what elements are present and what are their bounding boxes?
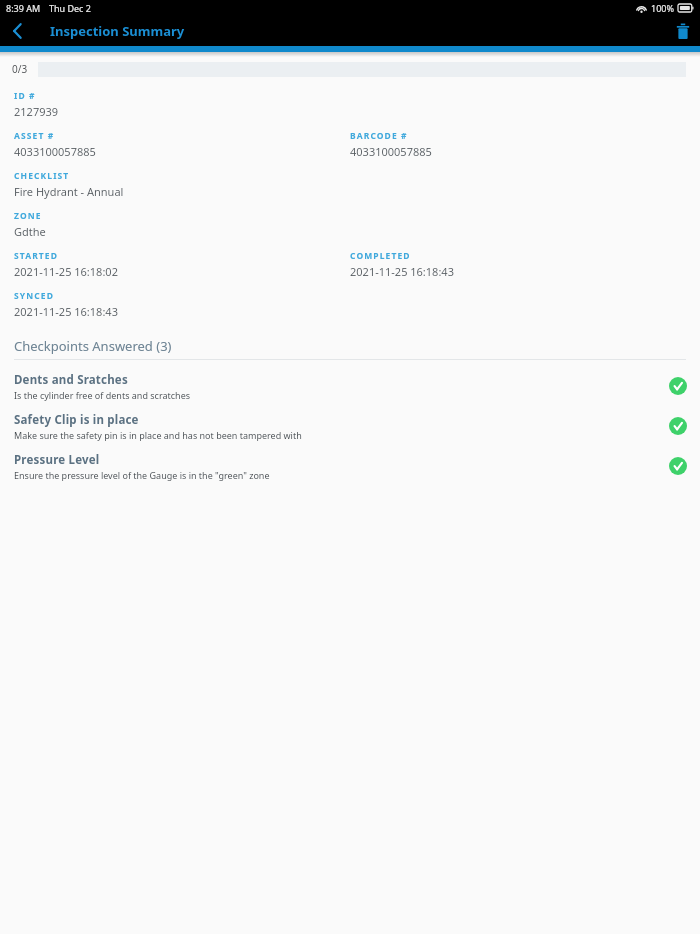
staticText: Pressure Level: [14, 452, 100, 468]
staticText: 2021-11-25 16:18:43: [14, 304, 118, 319]
staticText: 4033100057885: [350, 144, 432, 159]
staticText: ASSET #: [14, 130, 55, 142]
staticText: STARTED: [14, 250, 59, 262]
staticText: Inspection Summary: [50, 22, 185, 40]
staticText: BARCODE #: [350, 130, 408, 142]
staticText: Thu Dec 2: [49, 2, 91, 14]
staticText: 8:39 AM: [6, 2, 41, 14]
staticText: Fire Hydrant - Annual: [14, 184, 124, 199]
button[interactable]: Pressure Level: [0, 446, 700, 486]
button[interactable]: Delete: [666, 16, 700, 46]
staticText: 2021-11-25 16:18:43: [350, 264, 454, 279]
staticText: 2127939: [14, 104, 59, 119]
button[interactable]: Dents and Sratches: [0, 366, 700, 406]
staticText: Make sure the safety pin is in place and…: [14, 429, 302, 441]
staticText: SYNCED: [14, 290, 54, 302]
button[interactable]: Back: [0, 16, 34, 46]
staticText: Is the cylinder free of dents and scratc…: [14, 389, 191, 401]
staticText: 4033100057885: [14, 144, 96, 159]
staticText: 100%: [651, 2, 674, 14]
staticText: Dents and Sratches: [14, 372, 128, 388]
staticText: ID #: [14, 90, 36, 102]
staticText: Gdthe: [14, 224, 46, 239]
staticText: 0/3: [12, 62, 28, 76]
staticText: Checkpoints Answered (3): [14, 337, 172, 355]
staticText: 2021-11-25 16:18:02: [14, 264, 118, 279]
staticText: CHECKLIST: [14, 170, 70, 182]
staticText: COMPLETED: [350, 250, 411, 262]
staticText: Ensure the pressure level of the Gauge i…: [14, 469, 270, 481]
staticText: Safety Clip is in place: [14, 412, 139, 428]
staticText: ZONE: [14, 210, 42, 222]
button[interactable]: Safety Clip is in place: [0, 406, 700, 446]
